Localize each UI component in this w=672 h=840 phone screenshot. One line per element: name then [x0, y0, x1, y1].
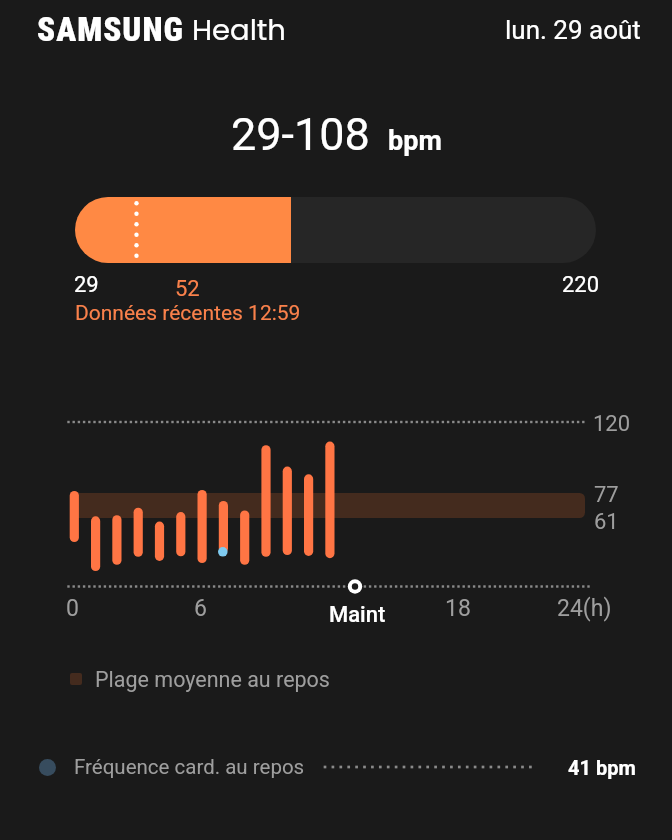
button[interactable]: Fréquence card. au repos — [0, 745, 672, 789]
staticText: Plage moyenne au repos — [95, 667, 330, 692]
button[interactable]: SAMSUNG — [37, 8, 289, 49]
staticText: 29 — [74, 272, 99, 298]
staticText: Health — [192, 10, 286, 51]
staticText: 29-108 — [231, 108, 370, 161]
button[interactable]: Maint — [329, 602, 386, 628]
staticText: Fréquence card. au repos — [74, 755, 305, 779]
staticText: 61 — [594, 509, 619, 535]
staticText: 120 — [593, 411, 631, 437]
staticText: 18 — [445, 595, 471, 622]
staticText: 52 — [175, 276, 200, 302]
staticText: bpm — [388, 125, 442, 157]
staticText: 41 bpm — [568, 756, 636, 779]
button[interactable]: Plage moyenne au repos — [0, 659, 672, 699]
button[interactable]: Plage de fréquence cardiaque — [75, 197, 596, 263]
staticText: 24(h) — [557, 595, 612, 622]
staticText: 77 — [594, 482, 619, 508]
staticText: 6 — [194, 595, 207, 622]
staticText: 220 — [562, 272, 600, 298]
staticText: SAMSUNG — [37, 10, 185, 49]
staticText: 0 — [66, 595, 79, 622]
button[interactable]: lun. 29 août — [505, 15, 641, 45]
button[interactable]: Données récentes 12:59 — [75, 301, 301, 326]
